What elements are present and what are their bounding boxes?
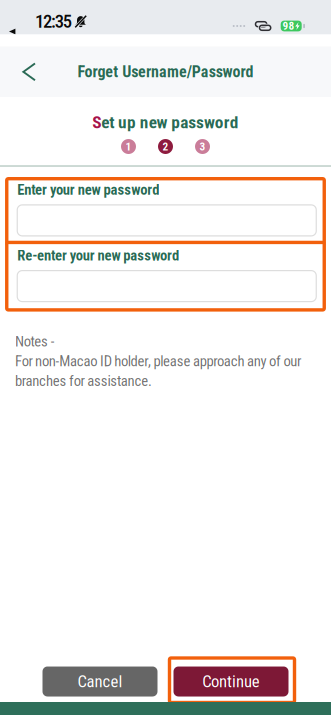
staticText: et up new password <box>101 112 239 132</box>
staticText: branches for assistance. <box>15 372 152 389</box>
staticText: Cancel <box>78 672 122 691</box>
staticText: 12:35 <box>35 10 72 32</box>
staticText: 2 <box>162 140 168 153</box>
staticText: For non-Macao ID holder, please approach… <box>15 353 301 370</box>
staticText: Forget Username/Password <box>78 62 253 81</box>
staticText: 3 <box>199 140 205 153</box>
staticText: Enter your new password <box>17 181 159 198</box>
staticText: 98 <box>283 19 295 33</box>
staticText: Continue <box>202 672 260 691</box>
staticText: Re-enter your new password <box>17 247 179 264</box>
staticText: Notes - <box>15 333 55 350</box>
button[interactable]: Back <box>0 50 40 94</box>
button[interactable]: Cancel <box>42 666 157 696</box>
staticText: S <box>92 112 101 132</box>
button[interactable]: Continue <box>173 666 288 696</box>
staticText: 1 <box>125 140 131 153</box>
